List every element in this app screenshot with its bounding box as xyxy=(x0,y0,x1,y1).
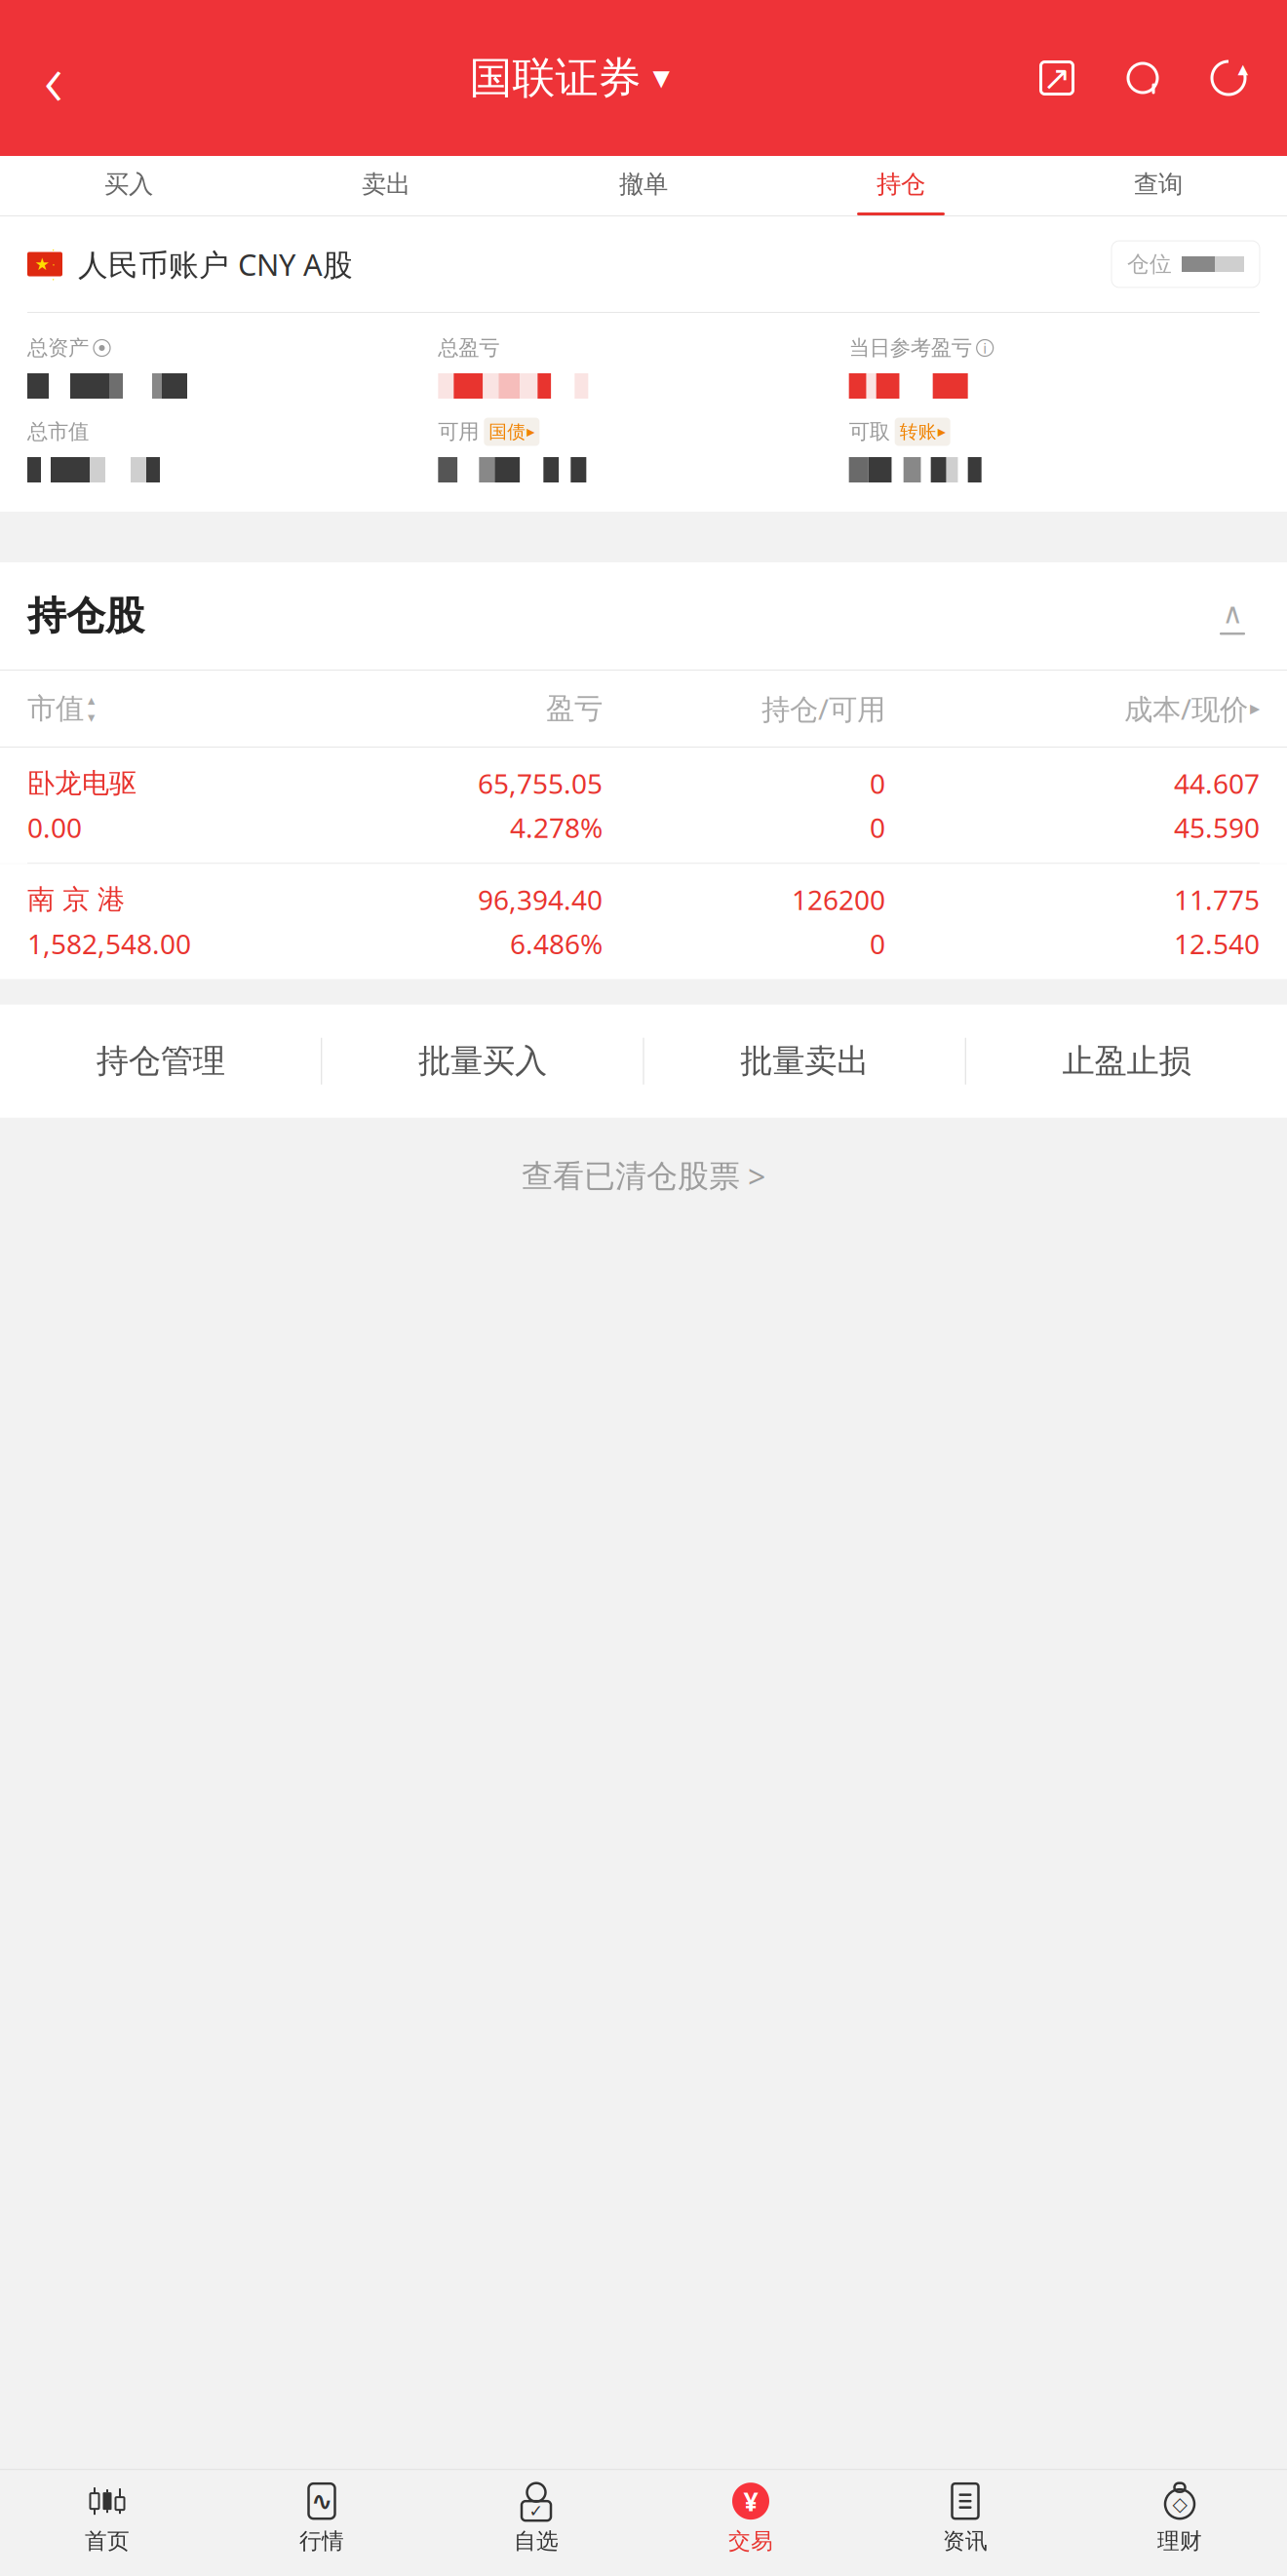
staticText: 自选 xyxy=(514,2527,559,2555)
button[interactable]: 资讯 xyxy=(858,2470,1072,2576)
staticText: ∧ xyxy=(1222,597,1243,630)
staticText: 人民币账户 CNY A股 xyxy=(78,244,353,284)
button[interactable]: 持仓 xyxy=(772,156,1030,215)
staticText: 4.278% xyxy=(510,809,603,845)
button[interactable]: 转账 xyxy=(895,418,950,446)
button[interactable]: ✓ xyxy=(429,2470,643,2576)
staticText: 卖出 xyxy=(362,169,410,199)
staticText: 撤单 xyxy=(619,169,668,199)
staticText: 总市值 xyxy=(27,419,89,445)
staticText: ▼ xyxy=(653,65,669,90)
staticText: 总资产 xyxy=(27,335,89,361)
button[interactable]: 持仓管理 xyxy=(0,1005,321,1118)
staticText: ★ xyxy=(35,255,50,274)
staticText: ¥ xyxy=(743,2484,758,2518)
staticText: 国债 xyxy=(489,421,526,443)
button[interactable]: 刷新 xyxy=(1203,53,1254,103)
staticText: 买入 xyxy=(104,169,153,199)
button[interactable]: 止盈止损 xyxy=(966,1005,1287,1118)
staticText: 6.486% xyxy=(510,925,603,962)
button[interactable]: 搜索 xyxy=(1117,53,1168,103)
button[interactable]: 批量卖出 xyxy=(644,1005,965,1118)
button[interactable]: 走势图 xyxy=(1205,594,1260,638)
staticText: ∿ xyxy=(311,2486,332,2516)
staticText: 持仓 xyxy=(877,169,925,199)
staticText: 止盈止损 xyxy=(1062,1041,1191,1081)
button[interactable]: 市值 xyxy=(27,691,281,726)
staticText: ‹ xyxy=(44,30,63,126)
button[interactable]: Back xyxy=(0,29,107,127)
staticText: 0 xyxy=(870,765,885,801)
staticText: 当日参考盈亏 xyxy=(849,335,972,361)
staticText: 持仓/可用 xyxy=(761,690,885,728)
staticText: 批量卖出 xyxy=(740,1041,869,1081)
staticText: 盈亏 xyxy=(546,691,603,726)
staticText: ◇ xyxy=(1172,2493,1187,2515)
button[interactable]: 查询 xyxy=(1030,156,1287,215)
button[interactable]: 首页 xyxy=(0,2470,214,2576)
button[interactable]: 卖出 xyxy=(257,156,515,215)
staticText: 持仓股 xyxy=(27,592,144,640)
button[interactable]: 分享 xyxy=(1032,53,1082,103)
staticText: ▶ xyxy=(527,426,535,438)
button[interactable]: ¥ xyxy=(643,2470,858,2576)
staticText: 45.590 xyxy=(1174,809,1260,845)
staticText: ✓ xyxy=(529,2501,544,2520)
staticText: ▴ xyxy=(1238,56,1248,80)
staticText: ↗ xyxy=(1043,59,1071,97)
staticText: 0 xyxy=(870,809,885,845)
staticText: 1,582,548.00 xyxy=(27,925,191,962)
staticText: ▴ xyxy=(88,692,95,708)
button[interactable]: 仓位 xyxy=(1111,241,1260,287)
staticText: 批量买入 xyxy=(418,1041,547,1081)
button[interactable]: 南 京 港 xyxy=(0,864,1287,979)
staticText: ▶ xyxy=(1250,701,1260,716)
staticText: 国联证券 xyxy=(469,52,641,104)
button[interactable]: 国债 xyxy=(484,418,539,446)
staticText: > xyxy=(748,1155,765,1197)
staticText: 交易 xyxy=(728,2527,773,2555)
staticText: 市值 xyxy=(27,691,84,726)
staticText: 65,755.05 xyxy=(478,765,603,801)
staticText: 首页 xyxy=(85,2527,130,2555)
staticText: 理财 xyxy=(1157,2527,1202,2555)
button[interactable]: 国联证券 xyxy=(469,52,669,104)
staticText: 12.540 xyxy=(1174,925,1260,962)
staticText: ▶ xyxy=(938,426,945,438)
staticText: 可用 xyxy=(438,419,479,445)
staticText: 总盈亏 xyxy=(438,335,499,361)
staticText: 资讯 xyxy=(943,2527,988,2555)
staticText: 0 xyxy=(870,925,885,962)
button[interactable]: ◇ xyxy=(1072,2470,1287,2576)
staticText: 南 京 港 xyxy=(27,883,125,916)
button[interactable]: 撤单 xyxy=(515,156,772,215)
button[interactable]: 卧龙电驱 xyxy=(0,748,1287,863)
button[interactable]: ∿ xyxy=(214,2470,429,2576)
staticText: 转账 xyxy=(900,421,937,443)
staticText: 查看已清仓股票 xyxy=(522,1157,740,1195)
staticText: 持仓管理 xyxy=(96,1041,225,1081)
staticText: 卧龙电驱 xyxy=(27,766,136,800)
staticText: 11.775 xyxy=(1174,881,1260,918)
staticText: 44.607 xyxy=(1174,765,1260,801)
staticText: 0.00 xyxy=(27,809,82,845)
button[interactable]: 查看已清仓股票 xyxy=(0,1118,1287,1235)
staticText: 96,394.40 xyxy=(478,881,603,918)
staticText: · xyxy=(52,242,55,256)
staticText: i xyxy=(983,338,987,358)
staticText: 查询 xyxy=(1134,169,1183,199)
staticText: 行情 xyxy=(299,2527,344,2555)
staticText: 成本/现价 xyxy=(1124,690,1248,728)
staticText: 可取 xyxy=(849,419,890,445)
staticText: · xyxy=(52,272,55,286)
staticText: 126200 xyxy=(792,881,885,918)
staticText: · xyxy=(52,257,55,271)
staticText: 仓位 xyxy=(1127,251,1172,278)
staticText: ▾ xyxy=(88,709,95,725)
button[interactable]: 批量买入 xyxy=(322,1005,643,1118)
button[interactable]: 买入 xyxy=(0,156,257,215)
